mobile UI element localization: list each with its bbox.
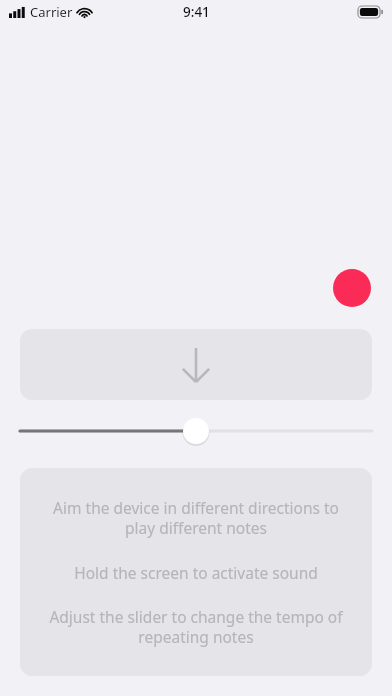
- staticText: 9:41: [183, 3, 210, 21]
- button[interactable]: Hold to play: [20, 329, 372, 400]
- staticText: Hold the screen to activate sound: [34, 562, 358, 583]
- button[interactable]: Tempo slider: [10, 412, 382, 450]
- staticText: Carrier: [30, 3, 73, 21]
- button[interactable]: Note indicator: [333, 269, 371, 307]
- staticText: Adjust the slider to change the tempo of…: [34, 606, 358, 648]
- staticText: Aim the device in different directions t…: [34, 497, 358, 539]
